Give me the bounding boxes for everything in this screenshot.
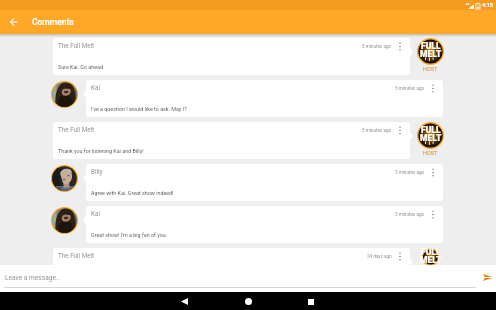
button[interactable]: The Full Melt: [53, 248, 410, 265]
staticText: HOST: [423, 150, 438, 156]
staticText: 5 minutes ago: [395, 86, 425, 91]
button[interactable]: More options: [397, 42, 403, 51]
staticText: The Full Melt: [58, 252, 95, 259]
staticText: I've a question I would like to ask. May…: [91, 106, 187, 112]
staticText: Billy: [91, 168, 103, 175]
staticText: 4:15: [482, 2, 494, 9]
button[interactable]: More options: [397, 252, 403, 261]
staticText: Great show! I'm a big fan of you.: [91, 232, 168, 238]
staticText: Kai: [91, 84, 100, 91]
staticText: Sure Kai. Go ahead: [58, 64, 103, 70]
button[interactable]: Kai: [86, 206, 443, 243]
button[interactable]: More options: [430, 84, 436, 93]
staticText: The Full Melt: [58, 42, 95, 49]
staticText: The Full Melt: [58, 126, 95, 133]
button[interactable]: Back: [3, 11, 25, 33]
staticText: Comments: [32, 17, 74, 27]
staticText: 5 minutes ago: [362, 44, 392, 49]
staticText: FULL: [421, 125, 441, 135]
button[interactable]: The Full Melt: [53, 38, 410, 75]
button[interactable]: Recent apps: [304, 295, 317, 308]
button[interactable]: More options: [430, 210, 436, 219]
staticText: Thank you for listening Kai and Billy!: [58, 148, 144, 154]
staticText: FULL: [421, 41, 441, 51]
button[interactable]: Send: [480, 270, 494, 284]
button[interactable]: The Full Melt: [53, 122, 410, 159]
staticText: Agree with Kai. Great show indeed!: [91, 190, 174, 196]
button[interactable]: Billy: [86, 164, 443, 201]
staticText: MELT: [420, 255, 442, 263]
staticText: Kai: [91, 210, 100, 217]
staticText: HOST: [423, 66, 438, 72]
button[interactable]: Home: [242, 295, 255, 308]
staticText: FULL: [421, 247, 441, 257]
button[interactable]: Back: [178, 295, 191, 308]
staticText: 5 minutes ago: [362, 128, 392, 133]
staticText: 24 days ago: [367, 254, 392, 259]
staticText: MELT: [420, 133, 442, 143]
button[interactable]: More options: [397, 126, 403, 135]
button[interactable]: More options: [430, 168, 436, 177]
staticText: MELT: [420, 49, 442, 59]
button[interactable]: Kai: [86, 80, 443, 117]
staticText: 5 minutes ago: [395, 212, 425, 217]
staticText: Leave a message..: [5, 274, 60, 282]
staticText: 5 minutes ago: [395, 170, 425, 175]
